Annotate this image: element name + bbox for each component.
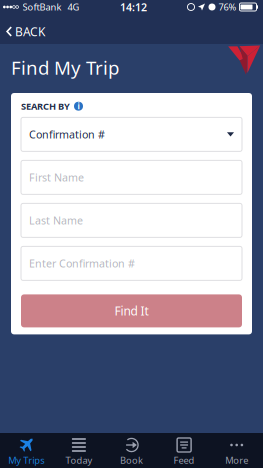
button[interactable]: First Name [21,160,242,194]
staticText: Find It [114,303,148,319]
staticText: 76% [218,1,236,13]
button[interactable]: Confirmation # [21,117,242,151]
button[interactable]: Book [105,433,158,468]
staticText: Enter Confirmation # [29,256,135,270]
button[interactable]: Feed [158,433,210,468]
button[interactable]: Enter Confirmation # [21,246,242,280]
staticText: Last Name [29,213,83,227]
staticText: Today [65,454,92,466]
staticText: i [77,101,79,111]
button[interactable]: Last Name [21,203,242,237]
staticText: More [225,454,248,466]
staticText: Book [120,454,143,466]
staticText: First Name [29,170,84,184]
staticText: Confirmation # [29,127,105,141]
staticText: 4G [67,1,79,13]
staticText: SEARCH BY [21,100,70,112]
button[interactable]: My Trips [0,433,53,468]
staticText: My Trips [8,454,44,466]
button[interactable]: BACK [0,14,53,44]
button[interactable]: Today [53,433,105,468]
staticText: SoftBank [22,1,61,13]
staticText: BACK [15,23,45,39]
staticText: Find My Trip [11,55,119,80]
staticText: Feed [174,454,195,466]
button[interactable]: Find It [21,294,242,327]
button[interactable]: More [210,433,263,468]
staticText: 14:12 [120,0,147,14]
